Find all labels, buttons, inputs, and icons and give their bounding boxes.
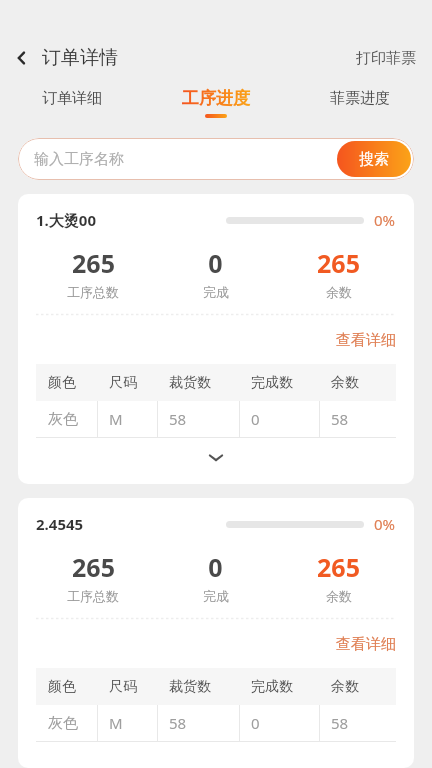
staticText: 颜色 bbox=[48, 678, 76, 696]
staticText: 余数 bbox=[331, 678, 359, 696]
other: Back bbox=[12, 48, 32, 68]
button[interactable]: Back bbox=[0, 40, 126, 76]
staticText: 搜索 bbox=[359, 150, 389, 169]
staticText: 0 bbox=[208, 246, 223, 280]
staticText: 0 bbox=[208, 550, 223, 584]
staticText: 菲票进度 bbox=[330, 89, 390, 108]
staticText: 完成 bbox=[203, 588, 229, 604]
button[interactable]: 菲票进度 bbox=[288, 80, 432, 126]
staticText: 灰色 bbox=[48, 410, 78, 429]
staticText: 1.大烫00 bbox=[36, 210, 96, 230]
staticText: 完成数 bbox=[251, 678, 293, 696]
staticText: 完成 bbox=[203, 284, 229, 300]
staticText: 裁货数 bbox=[169, 678, 211, 696]
staticText: 0 bbox=[251, 409, 260, 429]
staticText: 265 bbox=[72, 246, 115, 280]
staticText: 2.4545 bbox=[36, 514, 84, 534]
staticText: 265 bbox=[317, 550, 360, 584]
staticText: 裁货数 bbox=[169, 374, 211, 392]
staticText: 查看详细 bbox=[336, 635, 396, 654]
button[interactable]: 搜索 bbox=[337, 141, 411, 177]
button[interactable]: 查看详细 bbox=[318, 327, 414, 354]
staticText: M bbox=[109, 713, 123, 733]
button[interactable]: 工序进度 bbox=[144, 80, 288, 126]
staticText: 查看详细 bbox=[336, 331, 396, 350]
staticText: 输入工序名称 bbox=[34, 150, 124, 169]
button[interactable]: 订单详细 bbox=[0, 80, 144, 126]
staticText: 58 bbox=[169, 713, 187, 733]
staticText: 余数 bbox=[331, 374, 359, 392]
staticText: 尺码 bbox=[109, 374, 137, 392]
button[interactable]: 1.大烫00 bbox=[18, 194, 414, 484]
staticText: 颜色 bbox=[48, 374, 76, 392]
staticText: 打印菲票 bbox=[356, 49, 416, 68]
staticText: 订单详情 bbox=[42, 46, 118, 70]
button[interactable]: 查看详细 bbox=[318, 631, 414, 658]
staticText: 0% bbox=[374, 514, 396, 534]
staticText: 完成数 bbox=[251, 374, 293, 392]
staticText: 265 bbox=[317, 246, 360, 280]
staticText: 工序总数 bbox=[67, 284, 119, 300]
staticText: 工序进度 bbox=[182, 88, 250, 109]
staticText: 余数 bbox=[326, 284, 352, 300]
staticText: M bbox=[109, 409, 123, 429]
staticText: 58 bbox=[169, 409, 187, 429]
staticText: 0% bbox=[374, 210, 396, 230]
staticText: 灰色 bbox=[48, 714, 78, 733]
button[interactable]: 2.4545 bbox=[18, 498, 414, 768]
staticText: 订单详细 bbox=[42, 89, 102, 108]
staticText: 余数 bbox=[326, 588, 352, 604]
button[interactable]: Expand bbox=[18, 446, 414, 470]
staticText: 265 bbox=[72, 550, 115, 584]
staticText: 0 bbox=[251, 713, 260, 733]
staticText: 尺码 bbox=[109, 678, 137, 696]
staticText: 工序总数 bbox=[67, 588, 119, 604]
button[interactable]: 打印菲票 bbox=[340, 41, 432, 76]
staticText: 58 bbox=[331, 713, 349, 733]
staticText: 58 bbox=[331, 409, 349, 429]
